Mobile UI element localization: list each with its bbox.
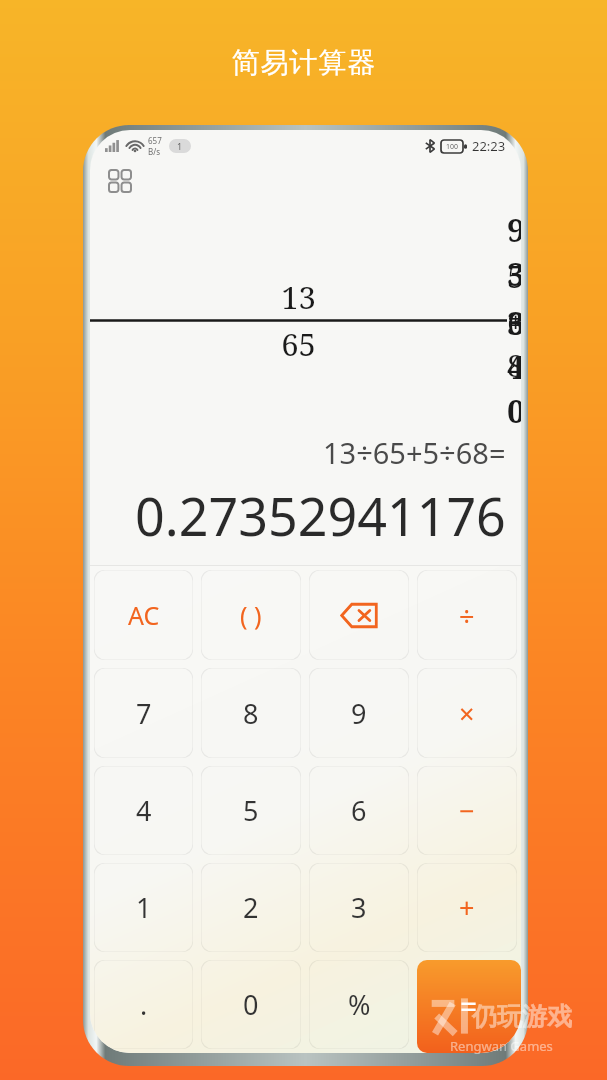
button[interactable]: .: [94, 960, 193, 1049]
staticText: 7: [136, 695, 152, 732]
staticText: ( ): [240, 598, 262, 632]
staticText: 4: [136, 792, 152, 829]
staticText: 0: [243, 986, 259, 1023]
button[interactable]: 3: [309, 863, 409, 952]
staticText: 22:23: [472, 137, 506, 155]
staticText: ÷: [459, 597, 475, 634]
button[interactable]: Backspace: [309, 570, 409, 660]
button[interactable]: %: [309, 960, 409, 1049]
staticText: 8: [243, 695, 259, 732]
staticText: 657: [148, 135, 162, 146]
button[interactable]: 9: [309, 668, 409, 758]
button[interactable]: 4: [94, 766, 193, 855]
button[interactable]: 1: [94, 863, 193, 952]
staticText: .: [140, 986, 148, 1023]
button[interactable]: 5: [201, 766, 301, 855]
staticText: %: [348, 986, 371, 1023]
staticText: 0.27352941176: [135, 480, 506, 551]
staticText: 6: [351, 792, 367, 829]
button[interactable]: +: [417, 863, 517, 952]
staticText: 仍玩游戏: [472, 1001, 572, 1032]
button[interactable]: ÷: [417, 570, 517, 660]
staticText: −: [459, 792, 475, 829]
staticText: Rengwan Games: [450, 1037, 553, 1055]
staticText: 65: [281, 323, 316, 365]
button[interactable]: 6: [309, 766, 409, 855]
button[interactable]: 7: [94, 668, 193, 758]
staticText: 13÷65+5÷68=: [323, 433, 506, 472]
button[interactable]: ×: [417, 668, 517, 758]
staticText: 9: [351, 695, 367, 732]
staticText: 简易计算器: [231, 45, 376, 80]
staticText: 3: [351, 889, 367, 926]
button[interactable]: Apps menu: [101, 162, 139, 200]
button[interactable]: =: [417, 960, 521, 1053]
button[interactable]: 8: [201, 668, 301, 758]
staticText: 2: [243, 889, 259, 926]
staticText: +: [459, 889, 475, 926]
button[interactable]: 2: [201, 863, 301, 952]
button[interactable]: 0: [201, 960, 301, 1049]
staticText: B/s: [148, 146, 161, 157]
staticText: =: [460, 986, 478, 1027]
staticText: 1: [136, 889, 152, 926]
staticText: 1: [177, 140, 183, 152]
button[interactable]: −: [417, 766, 517, 855]
staticText: AC: [128, 598, 160, 632]
staticText: 13: [281, 276, 316, 318]
button[interactable]: ( ): [201, 570, 301, 660]
staticText: ×: [459, 695, 475, 732]
staticText: 5: [243, 792, 259, 829]
button[interactable]: AC: [94, 570, 193, 660]
staticText: 100: [446, 142, 459, 152]
